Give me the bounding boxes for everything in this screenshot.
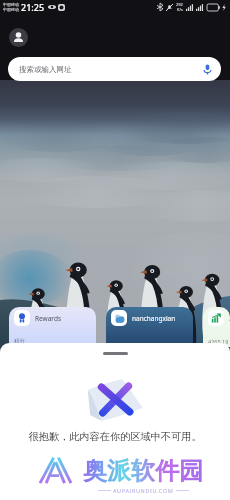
staticText: 4265.19: [208, 338, 229, 345]
staticText: 中国移动: [3, 7, 19, 12]
button[interactable]: 搜索或输入网址: [8, 57, 221, 81]
staticText: 搜索或输入网址: [19, 65, 72, 74]
staticText: Rewards: [35, 314, 62, 323]
button[interactable]: Rewards: [9, 307, 96, 347]
button[interactable]: Account: [9, 28, 28, 47]
staticText: nanchangxian: [132, 314, 176, 323]
staticText: K/s: [177, 7, 183, 12]
staticText: 奥派软件园: [83, 456, 203, 486]
staticText: AUPAIRUNDIU.COM: [113, 487, 174, 494]
staticText: 很抱歉，此内容在你的区域中不可用。: [28, 430, 202, 443]
button[interactable]: 股: [203, 307, 230, 347]
staticText: 21:25: [21, 1, 45, 13]
button[interactable]: nanchangxian: [106, 307, 193, 347]
staticText: 股: [229, 314, 230, 322]
staticText: 积分: [14, 338, 25, 345]
staticText: 中国移动: [3, 2, 19, 7]
staticText: 292: [176, 2, 183, 7]
